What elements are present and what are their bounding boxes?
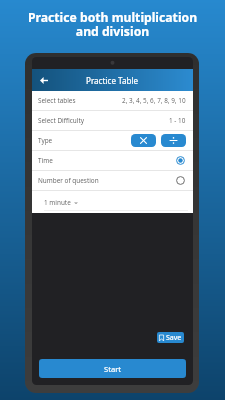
button[interactable]: Time xyxy=(32,151,193,171)
staticText: 1 - 10 xyxy=(169,116,186,125)
button[interactable]: Start xyxy=(39,359,186,378)
staticText: Select tables xyxy=(38,96,76,105)
button[interactable]: Not selected xyxy=(175,175,186,186)
staticText: Type xyxy=(38,136,53,145)
button[interactable]: 1 minute xyxy=(44,198,78,207)
staticText: Select Difficulty xyxy=(38,116,84,125)
staticText: Practice both multiplication and divisio… xyxy=(8,9,217,39)
button[interactable]: Select Difficulty xyxy=(32,111,193,131)
button[interactable]: Division xyxy=(161,134,186,147)
staticText: 1 minute xyxy=(44,198,71,207)
button[interactable]: Selected xyxy=(175,155,186,166)
staticText: Time xyxy=(38,156,53,165)
button[interactable]: Back xyxy=(38,74,49,87)
button[interactable]: Number of question xyxy=(32,171,193,191)
staticText: Save xyxy=(166,333,182,343)
staticText: Start xyxy=(104,364,122,374)
staticText: 2, 3, 4, 5, 6, 7, 8, 9, 10 xyxy=(122,96,186,105)
staticText: Number of question xyxy=(38,176,99,185)
button[interactable]: Save xyxy=(157,332,184,343)
button[interactable]: Select tables xyxy=(32,91,193,111)
button[interactable]: Type xyxy=(32,131,193,151)
staticText: Practice Table xyxy=(86,75,139,86)
button[interactable]: Multiplication xyxy=(131,134,156,147)
